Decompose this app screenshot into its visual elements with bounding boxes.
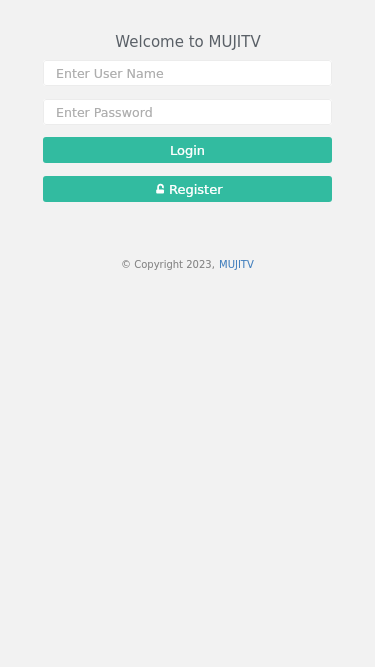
button[interactable]: Enter Password <box>43 99 332 125</box>
button[interactable]: MUJITV <box>219 259 254 271</box>
button[interactable]: Register <box>43 176 332 202</box>
staticText: Login <box>170 143 206 158</box>
staticText: © Copyright 2023, <box>121 259 219 271</box>
staticText: Welcome to MUJITV <box>115 33 261 50</box>
staticText: Register <box>169 182 223 197</box>
other: Register <box>153 184 164 194</box>
button[interactable]: Login <box>43 137 332 163</box>
staticText: Enter Password <box>56 105 153 120</box>
staticText: Enter User Name <box>56 66 164 81</box>
button[interactable]: Enter User Name <box>43 60 332 86</box>
